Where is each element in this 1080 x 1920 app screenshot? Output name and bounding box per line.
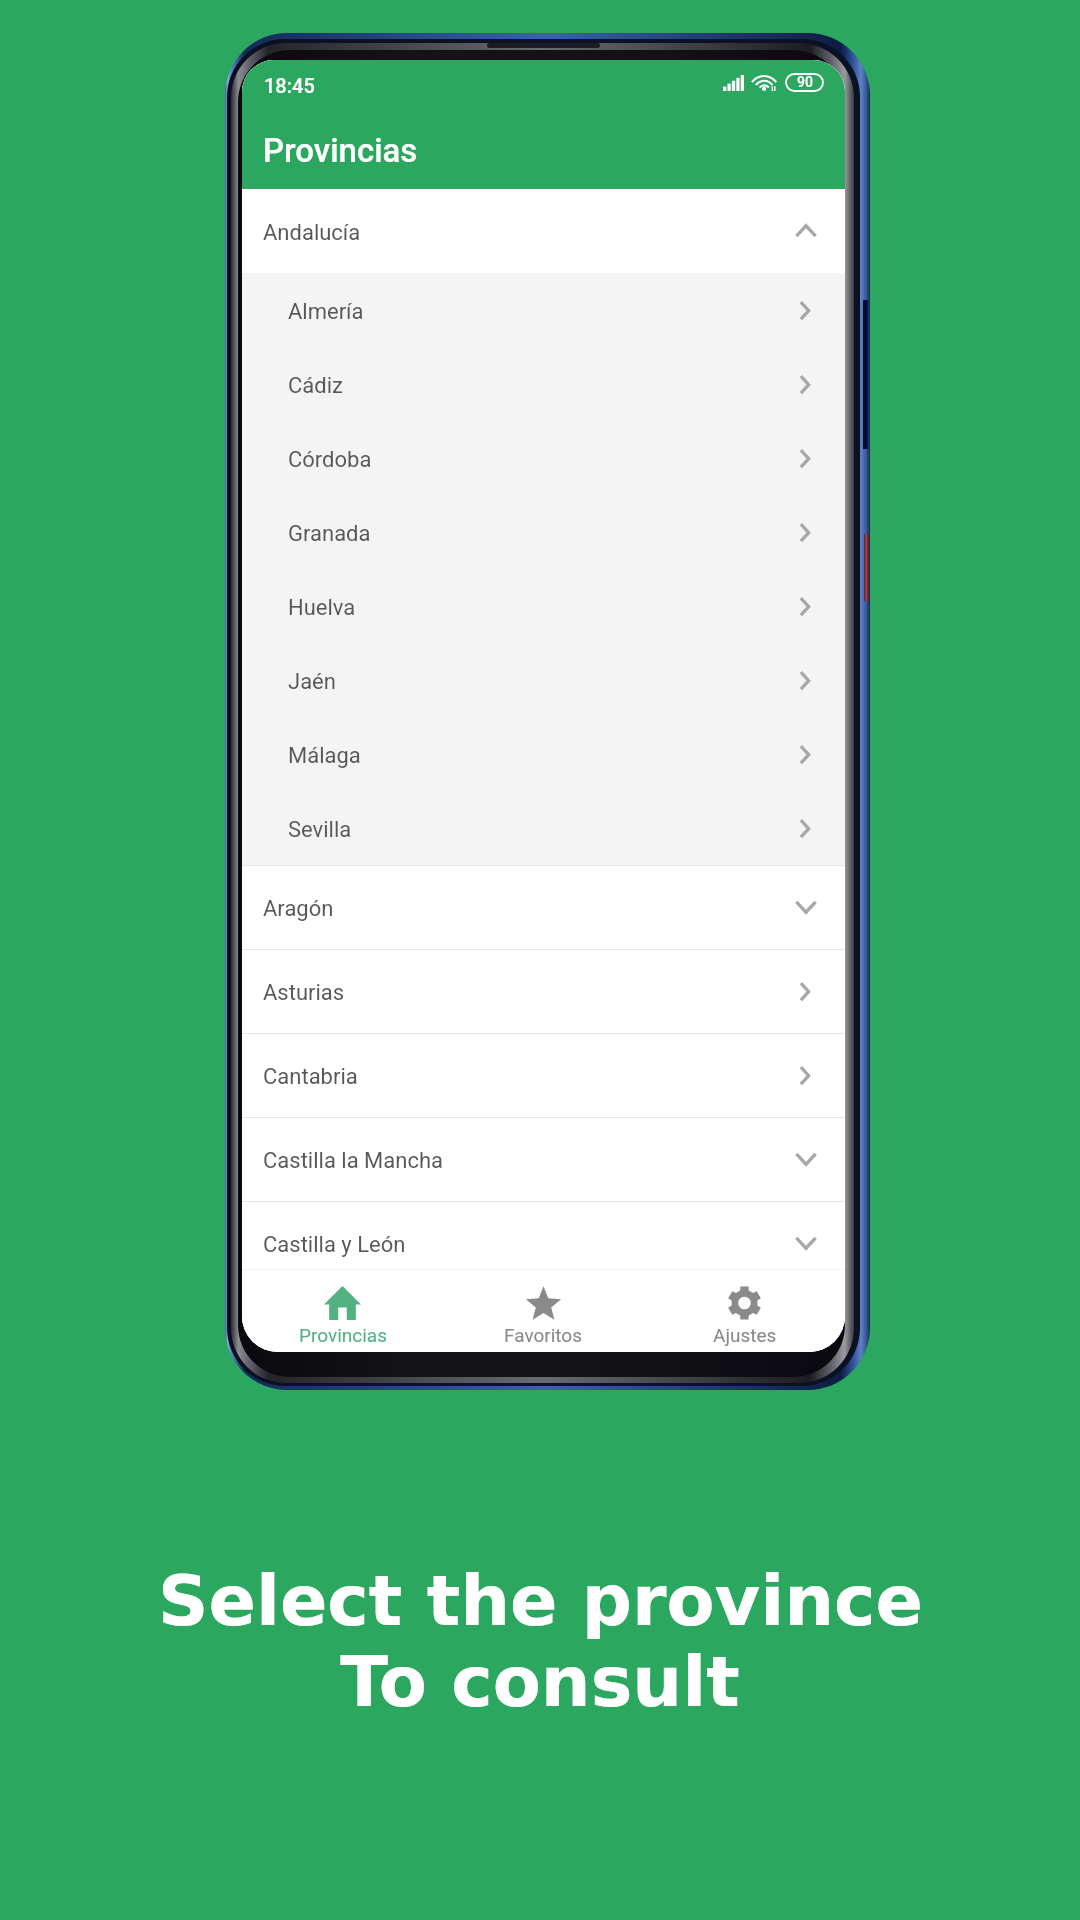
button[interactable]: Córdoba [242,421,845,495]
staticText: Castilla y León [263,1232,406,1258]
button[interactable]: Favoritos [443,1270,644,1352]
button[interactable]: Jaén [242,643,845,717]
staticText: To consult [340,1641,740,1722]
staticText: Cádiz [288,373,343,399]
button[interactable]: Provincias [242,1270,443,1352]
staticText: Provincias [263,131,418,170]
button[interactable]: Aragón [242,865,845,949]
staticText: Málaga [288,743,361,769]
staticText: Castilla la Mancha [263,1148,444,1174]
staticText: Jaén [288,669,336,695]
button[interactable]: Huelva [242,569,845,643]
staticText: Favoritos [504,1324,583,1346]
button[interactable]: Castilla y León [242,1201,845,1285]
staticText: Select the province [158,1560,923,1641]
button[interactable]: Castilla la Mancha [242,1117,845,1201]
button[interactable]: Málaga [242,717,845,791]
staticText: Provincias [299,1324,387,1346]
staticText: Sevilla [288,817,352,843]
staticText: 18:45 [264,74,315,97]
staticText: Huelva [288,595,356,621]
staticText: Aragón [263,896,334,922]
button[interactable]: Ajustes [644,1270,845,1352]
staticText: Granada [288,521,371,547]
staticText: Cantabria [263,1064,358,1090]
staticText: Andalucía [263,220,361,246]
button[interactable]: Cádiz [242,347,845,421]
button[interactable]: Granada [242,495,845,569]
button[interactable]: Sevilla [242,791,845,865]
staticText: Asturias [263,980,345,1006]
staticText: 90 [797,74,813,90]
button[interactable]: Cantabria [242,1033,845,1117]
button[interactable]: Asturias [242,949,845,1033]
staticText: Córdoba [288,447,372,473]
button[interactable]: Almería [242,273,845,347]
staticText: Ajustes [713,1324,777,1346]
staticText: Almería [288,299,364,325]
button[interactable]: Andalucía [242,189,845,273]
